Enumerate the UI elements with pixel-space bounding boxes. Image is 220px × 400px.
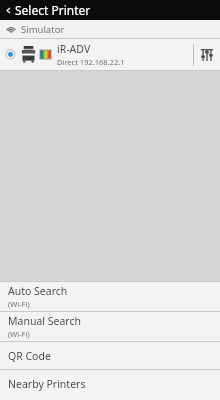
button[interactable]: Select Printer <box>0 0 220 20</box>
staticText: QR Code <box>8 349 51 363</box>
button[interactable]: Manual Search <box>0 312 220 341</box>
staticText: Nearby Printers <box>8 377 86 391</box>
button[interactable]: Printer settings <box>194 39 220 70</box>
button[interactable]: Auto Search <box>0 282 220 311</box>
staticText: (Wi-Fi) <box>8 329 30 339</box>
staticText: Auto Search <box>8 284 68 298</box>
staticText: Select Printer <box>15 2 91 18</box>
staticText: (Wi-Fi) <box>8 299 30 309</box>
staticText: Simulator <box>21 23 65 36</box>
button[interactable]: Nearby Printers <box>0 370 220 397</box>
staticText: Direct 192.168.22.1 <box>57 57 125 67</box>
staticText: Manual Search <box>8 314 81 328</box>
button[interactable]: QR Code <box>0 342 220 369</box>
staticText: iR-ADV <box>57 42 91 56</box>
button[interactable]: iR-ADV <box>0 39 220 70</box>
